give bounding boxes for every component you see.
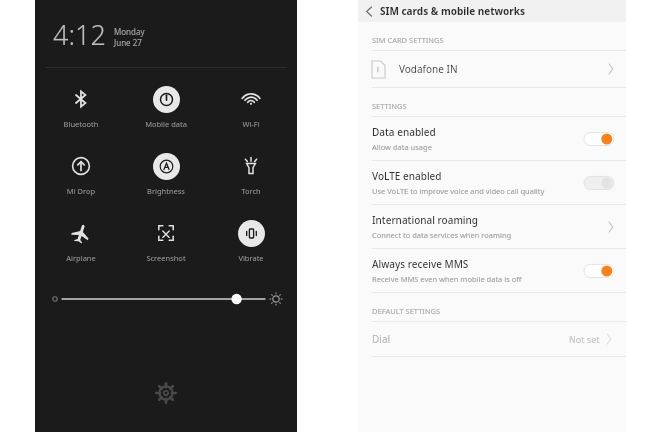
- staticText: Dial: [372, 332, 391, 346]
- button[interactable]: Mi Drop: [42, 149, 120, 198]
- button[interactable]: VoLTE enabled: [358, 161, 626, 204]
- button[interactable]: International roaming: [358, 205, 626, 248]
- button[interactable]: Back: [358, 0, 380, 22]
- staticText: Airplane: [42, 253, 120, 263]
- staticText: DEFAULT SETTINGS: [372, 306, 441, 316]
- staticText: Allow data usage: [372, 142, 432, 152]
- staticText: June 27: [114, 37, 142, 48]
- staticText: Mobile data: [127, 119, 205, 129]
- staticText: Torch: [212, 186, 290, 196]
- staticText: Screenshot: [127, 253, 205, 263]
- button[interactable]: Bluetooth: [42, 82, 120, 131]
- staticText: Connect to data services when roaming: [372, 230, 512, 240]
- button[interactable]: Data enabled: [358, 117, 626, 160]
- button[interactable]: Always receive MMS: [358, 249, 626, 292]
- staticText: Brightness: [127, 186, 205, 196]
- button[interactable]: Brightness: [127, 149, 205, 198]
- staticText: Monday: [114, 26, 145, 37]
- button[interactable]: Vodafone IN: [358, 51, 626, 87]
- button[interactable]: Wi-Fi: [212, 82, 290, 131]
- staticText: SIM CARD SETTINGS: [372, 35, 444, 45]
- staticText: Not set: [569, 333, 600, 345]
- button[interactable]: Mobile data: [127, 82, 205, 131]
- button[interactable]: Screenshot: [127, 216, 205, 265]
- staticText: 4:12: [53, 16, 106, 53]
- staticText: SIM cards & mobile networks: [380, 4, 526, 18]
- staticText: Use VoLTE to improve voice and video cal…: [372, 186, 545, 196]
- staticText: Data enabled: [372, 125, 436, 139]
- staticText: Vibrate: [212, 253, 290, 263]
- staticText: Wi-Fi: [212, 119, 290, 129]
- button[interactable]: Dial: [358, 322, 626, 356]
- button[interactable]: Airplane: [42, 216, 120, 265]
- button[interactable]: Settings: [149, 376, 183, 410]
- staticText: Vodafone IN: [399, 62, 458, 76]
- staticText: Mi Drop: [42, 186, 120, 196]
- staticText: Receive MMS even when mobile data is off: [372, 274, 522, 284]
- button[interactable]: Vibrate: [212, 216, 290, 265]
- button[interactable]: Toggle on: [584, 131, 614, 147]
- button[interactable]: Toggle off: [584, 175, 614, 191]
- staticText: Always receive MMS: [372, 257, 469, 271]
- button[interactable]: Toggle on: [584, 263, 614, 279]
- button[interactable]: [35, 287, 297, 311]
- staticText: Bluetooth: [42, 119, 120, 129]
- button[interactable]: Back: [358, 0, 626, 22]
- staticText: SETTINGS: [372, 101, 407, 111]
- staticText: International roaming: [372, 213, 479, 227]
- staticText: VoLTE enabled: [372, 169, 442, 183]
- button[interactable]: Torch: [212, 149, 290, 198]
